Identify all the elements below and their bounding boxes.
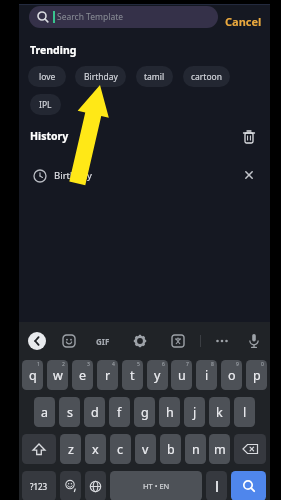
button[interactable]: Cancel [225,14,262,29]
staticText: p [253,367,261,384]
button[interactable]: y [147,360,168,390]
button[interactable]: Birthday [33,167,257,183]
staticText: tamil [144,71,165,83]
staticText: j [193,404,197,421]
button[interactable]: b [160,434,181,464]
button[interactable]: j [184,397,205,427]
staticText: Cancel [225,14,262,29]
staticText: q [29,367,37,384]
button[interactable]: v [135,434,156,464]
button[interactable] [28,332,46,350]
staticText: o [228,367,236,384]
button[interactable]: e [72,360,93,390]
staticText: 5 [137,361,140,368]
staticText: 9 [236,361,239,368]
staticText: v [142,441,149,458]
button[interactable]: h [159,397,180,427]
staticText: 2 [62,361,65,368]
button[interactable] [234,434,266,464]
button[interactable]: u [171,360,192,390]
button[interactable] [244,170,254,180]
staticText: Search Template [57,11,124,23]
staticText: Birthday [54,169,92,182]
staticText: k [216,404,223,421]
staticText: GIF [96,336,110,347]
button[interactable]: z [60,434,81,464]
button[interactable]: c [110,434,131,464]
button[interactable]: o [221,360,242,390]
staticText: n [192,441,200,458]
staticText: Birthday [84,71,118,83]
button[interactable]: i [196,360,217,390]
staticText: e [79,367,87,384]
staticText: IPL [39,99,52,111]
button[interactable] [85,471,106,500]
staticText: 7 [186,361,189,368]
staticText: b [167,441,175,458]
button[interactable]: a [34,397,55,427]
button[interactable] [206,471,227,500]
staticText: g [141,404,149,421]
staticText: cartoon [191,71,222,83]
staticText: 4 [112,361,115,368]
staticText: d [91,404,99,421]
staticText: love [39,71,56,83]
staticText: ?123 [30,481,48,492]
staticText: z [68,441,74,458]
staticText: a [41,404,49,421]
staticText: HT • EN [143,481,170,491]
button[interactable]: Search Template [29,6,218,28]
staticText: c [117,441,124,458]
button[interactable]: ?123 [22,471,56,500]
button[interactable]: w [47,360,68,390]
staticText: 0 [261,361,264,368]
button[interactable]: IPL [30,94,61,115]
button[interactable] [60,471,81,500]
staticText: 1 [37,361,40,368]
button[interactable]: Birthday [75,66,126,87]
staticText: u [178,367,186,384]
staticText: m [214,441,226,458]
staticText: h [166,404,174,421]
button[interactable]: HT • EN [110,471,202,500]
button[interactable]: q [22,360,43,390]
button[interactable]: GIF [96,336,110,347]
staticText: 3 [87,361,90,368]
staticText: 8 [211,361,214,368]
staticText: l [243,404,247,421]
staticText: 6 [162,361,165,368]
button[interactable]: p [246,360,267,390]
button[interactable]: n [185,434,206,464]
staticText: Trending [30,43,77,57]
button[interactable]: f [109,397,130,427]
button[interactable]: t [122,360,143,390]
button[interactable]: d [84,397,105,427]
button[interactable]: m [209,434,230,464]
button[interactable] [133,334,147,348]
button[interactable] [22,434,56,464]
button[interactable]: k [209,397,230,427]
button[interactable] [62,334,76,348]
button[interactable]: x [85,434,106,464]
button[interactable]: g [134,397,155,427]
staticText: r [105,367,111,384]
staticText: f [117,404,122,421]
button[interactable] [247,333,261,349]
button[interactable] [231,471,266,500]
button[interactable] [241,129,257,145]
staticText: y [154,367,161,384]
staticText: History [30,129,69,143]
button[interactable] [171,334,185,348]
button[interactable]: l [234,397,255,427]
button[interactable]: s [59,397,80,427]
button[interactable] [215,334,229,348]
staticText: x [92,441,99,458]
button[interactable]: tamil [136,66,173,87]
staticText: i [205,367,209,384]
button[interactable]: cartoon [183,66,230,87]
button[interactable]: love [28,66,66,87]
button[interactable]: r [97,360,118,390]
staticText: w [53,367,63,384]
staticText: s [67,404,73,421]
staticText: t [130,367,135,384]
